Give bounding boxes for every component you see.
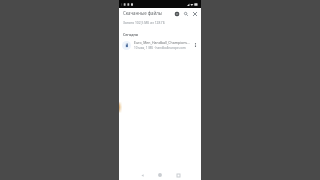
staticText: Сегодня [123,32,138,37]
staticText: 10 мая, 1 МБ · handballeurope.com [134,46,186,50]
staticText: Скачанные файлы [123,10,172,16]
button[interactable]: Back [133,170,151,180]
button[interactable]: Euro_Men_Handball_Championship... [119,38,201,52]
staticText: Занято 102,5 МБ из 128 ГБ [123,20,165,24]
button[interactable]: Settings [172,9,181,18]
button[interactable]: Home [151,170,169,180]
button[interactable]: Close [190,9,199,18]
button[interactable]: Recent apps [169,170,187,180]
staticText: Euro_Men_Handball_Championship... [134,40,191,45]
button[interactable]: Search [181,9,190,18]
button[interactable]: More options [192,42,198,48]
